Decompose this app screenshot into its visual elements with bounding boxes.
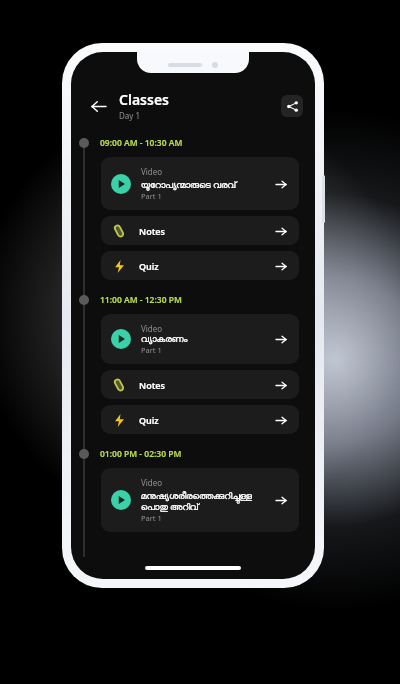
staticText: Classes bbox=[119, 90, 169, 109]
staticText: Part 1 bbox=[141, 513, 162, 523]
staticText: 01:00 PM - 02:30 PM bbox=[100, 448, 182, 460]
staticText: Part 1 bbox=[141, 191, 162, 201]
button[interactable]: Video bbox=[101, 157, 299, 210]
staticText: 09:00 AM - 10:30 AM bbox=[100, 137, 183, 149]
staticText: Day 1 bbox=[119, 110, 141, 121]
staticText: വ്യാകരണം bbox=[141, 335, 188, 344]
button[interactable]: Video bbox=[101, 468, 299, 532]
button[interactable]: Quiz bbox=[101, 251, 299, 280]
staticText: മനുഷ്യശരീരത്തെക്കുറിച്ചുള്ള പൊതു അറിവ് bbox=[141, 489, 267, 512]
button[interactable]: Video bbox=[101, 314, 299, 364]
staticText: 11:00 AM - 12:30 PM bbox=[100, 294, 182, 306]
staticText: Video bbox=[141, 477, 163, 488]
button[interactable]: Back bbox=[83, 91, 113, 121]
button[interactable]: Share bbox=[281, 95, 303, 117]
staticText: Quiz bbox=[139, 260, 159, 272]
staticText: Part 1 bbox=[141, 345, 162, 355]
staticText: Quiz bbox=[139, 414, 159, 426]
staticText: Video bbox=[141, 323, 163, 334]
staticText: Video bbox=[141, 166, 163, 177]
button[interactable]: Quiz bbox=[101, 405, 299, 434]
staticText: യൂറോപ്യന്മാരുടെ വരവ് bbox=[141, 178, 237, 190]
staticText: Notes bbox=[139, 225, 166, 237]
staticText: Notes bbox=[139, 379, 166, 391]
button[interactable]: Notes bbox=[101, 216, 299, 245]
button[interactable]: Notes bbox=[101, 370, 299, 399]
